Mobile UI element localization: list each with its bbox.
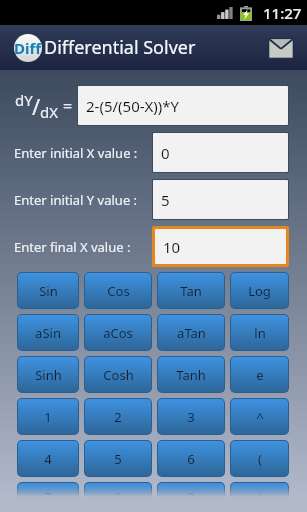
- staticText: 6: [187, 450, 195, 468]
- staticText: ^: [256, 408, 264, 426]
- button[interactable]: 3: [158, 399, 224, 434]
- staticText: 3: [187, 408, 195, 426]
- button[interactable]: (: [231, 441, 288, 476]
- button[interactable]: 0: [153, 133, 288, 172]
- button[interactable]: Tan: [158, 273, 224, 308]
- staticText: Tanh: [176, 366, 206, 384]
- staticText: 10: [163, 237, 181, 257]
- staticText: Tan: [180, 282, 202, 300]
- button[interactable]: 9: [158, 483, 224, 511]
- staticText: 7: [44, 488, 52, 506]
- staticText: Sinh: [35, 366, 62, 384]
- button[interactable]: 4: [18, 441, 78, 476]
- button[interactable]: Log: [231, 273, 288, 308]
- staticText: Cosh: [103, 366, 134, 384]
- staticText: aCos: [103, 324, 133, 342]
- button[interactable]: 7: [18, 483, 78, 511]
- button[interactable]: 2-(5/(50-X))*Y: [78, 86, 288, 125]
- button[interactable]: 2: [85, 399, 151, 434]
- button[interactable]: ln: [231, 315, 288, 350]
- staticText: dY: [15, 90, 33, 110]
- staticText: Cos: [107, 282, 130, 300]
- staticText: aTan: [177, 324, 206, 342]
- button[interactable]: 1: [18, 399, 78, 434]
- staticText: 5: [114, 450, 122, 468]
- staticText: 5: [161, 190, 170, 210]
- staticText: Differential Solver: [44, 35, 196, 60]
- staticText: (: [258, 450, 262, 468]
- staticText: Log: [248, 282, 271, 300]
- staticText: Enter initial Y value :: [14, 191, 138, 209]
- button[interactable]: aCos: [85, 315, 151, 350]
- button[interactable]: Sin: [18, 273, 78, 308]
- staticText: Enter initial X value :: [14, 144, 138, 162]
- button[interactable]: ^: [231, 399, 288, 434]
- staticText: 4: [44, 450, 52, 468]
- button[interactable]: aTan: [158, 315, 224, 350]
- button[interactable]: aSin: [18, 315, 78, 350]
- staticText: 1: [44, 408, 52, 426]
- staticText: e: [256, 366, 264, 384]
- staticText: Diff: [14, 38, 42, 58]
- staticText: 11:27: [263, 3, 302, 23]
- staticText: =: [63, 95, 73, 117]
- button[interactable]: Email: [263, 31, 299, 65]
- staticText: 0: [161, 143, 170, 163]
- button[interactable]: Sinh: [18, 357, 78, 392]
- staticText: aSin: [35, 324, 61, 342]
- staticText: 2-(5/(50-X))*Y: [86, 96, 180, 116]
- staticText: 9: [187, 488, 195, 506]
- button[interactable]: 5: [153, 180, 288, 219]
- staticText: 8: [114, 488, 122, 506]
- staticText: /: [32, 91, 41, 121]
- button[interactable]: Cosh: [85, 357, 151, 392]
- button[interactable]: Cos: [85, 273, 151, 308]
- staticText: Sin: [39, 282, 58, 300]
- staticText: 2: [114, 408, 122, 426]
- staticText: ): [258, 488, 262, 506]
- button[interactable]: Tanh: [158, 357, 224, 392]
- button[interactable]: 10: [155, 229, 286, 264]
- button[interactable]: e: [231, 357, 288, 392]
- button[interactable]: 5: [85, 441, 151, 476]
- staticText: Enter final X value :: [14, 238, 131, 256]
- button[interactable]: ): [231, 483, 288, 511]
- staticText: ln: [254, 324, 266, 342]
- button[interactable]: 8: [85, 483, 151, 511]
- button[interactable]: 6: [158, 441, 224, 476]
- staticText: dX: [40, 102, 59, 122]
